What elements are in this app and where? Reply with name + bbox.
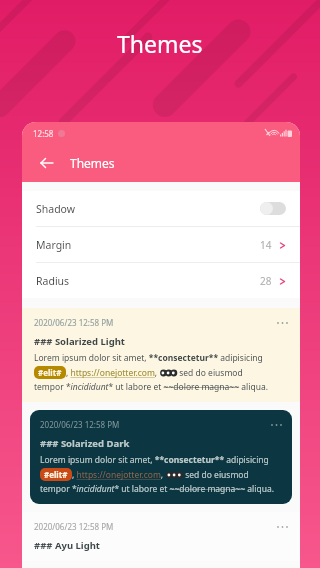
staticText: #elit# <box>44 469 68 480</box>
staticText: Radius <box>36 274 70 288</box>
staticText: , https://onejotter.com, <box>72 469 166 481</box>
button[interactable]: Shadow <box>22 191 300 226</box>
staticText: ### Ayu Light <box>34 539 100 552</box>
staticText: ### Solarized Dark <box>40 437 130 450</box>
button[interactable]: Back <box>34 150 60 176</box>
staticText: , https://onejotter.com, <box>66 367 160 379</box>
button[interactable]: 2020/06/23 12:58 PM <box>30 410 292 504</box>
staticText: sed do eiusmod <box>177 367 243 379</box>
staticText: tempor *incididunt* ut labore et ~~dolor… <box>40 483 274 495</box>
staticText: 2020/06/23 12:58 PM <box>34 521 114 532</box>
button[interactable]: Radius <box>22 263 300 298</box>
staticText: Lorem ipsum dolor sit amet, **consectetu… <box>40 454 269 466</box>
staticText: 14 <box>260 238 272 252</box>
staticText: #elit# <box>38 367 62 378</box>
staticText: 2020/06/23 12:58 PM <box>40 419 120 430</box>
staticText: 12:58 <box>33 128 54 139</box>
staticText: sed do eiusmod <box>183 469 249 481</box>
button[interactable]: Margin <box>22 227 300 262</box>
button[interactable]: 2020/06/23 12:58 PM <box>22 308 300 402</box>
staticText: tempor *incididunt* ut labore et ~~dolor… <box>34 381 268 393</box>
staticText: Margin <box>36 238 72 252</box>
staticText: 2020/06/23 12:58 PM <box>34 317 114 328</box>
staticText: Shadow <box>36 202 75 216</box>
staticText: Themes <box>117 28 203 59</box>
staticText: ### Solarized Light <box>34 335 125 348</box>
staticText: Lorem ipsum dolor sit amet, **consectetu… <box>34 352 263 364</box>
staticText: 28 <box>260 274 272 288</box>
staticText: Themes <box>70 155 115 171</box>
